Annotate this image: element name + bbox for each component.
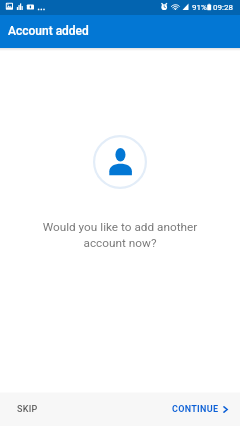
button[interactable]: CONTINUE (160, 396, 240, 423)
staticText: 09:28 (213, 3, 233, 12)
button[interactable]: SKIP (0, 396, 55, 423)
staticText: Would you like to add another account no… (41, 220, 199, 250)
staticText: 91% (192, 3, 207, 12)
staticText: SKIP (17, 404, 38, 415)
other: Continue (222, 406, 229, 413)
staticText: CONTINUE (172, 404, 219, 415)
staticText: Account added (8, 24, 89, 38)
